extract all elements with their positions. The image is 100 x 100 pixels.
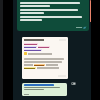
button[interactable] bbox=[22, 37, 68, 79]
button[interactable] bbox=[22, 83, 67, 96]
button[interactable] bbox=[17, 0, 89, 31]
button[interactable]: Attachment bbox=[70, 80, 76, 86]
